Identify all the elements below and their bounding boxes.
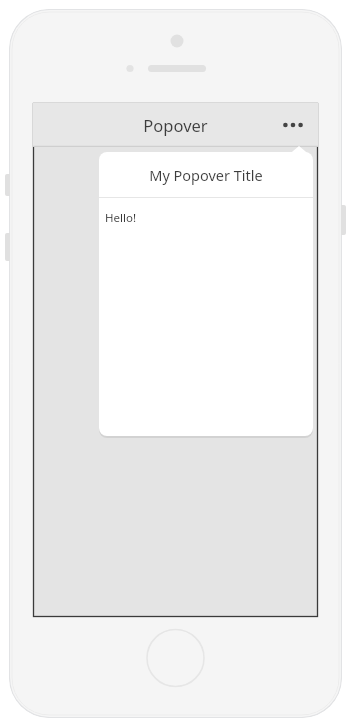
button[interactable]: More options <box>274 103 312 147</box>
staticText: My Popover Title <box>149 165 263 185</box>
staticText: Hello! <box>105 210 136 226</box>
staticText: Popover <box>143 114 208 136</box>
